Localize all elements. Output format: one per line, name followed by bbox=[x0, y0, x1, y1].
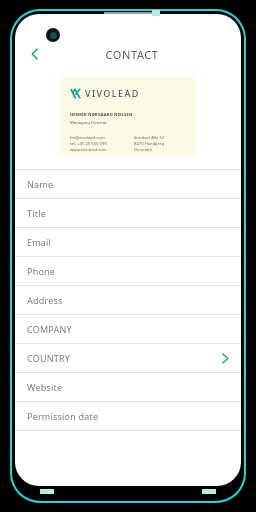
button[interactable]: Back bbox=[21, 40, 49, 68]
staticText: Email bbox=[27, 236, 229, 248]
button[interactable]: Website bbox=[15, 373, 241, 401]
staticText: COUNTRY bbox=[27, 352, 221, 364]
staticText: CONTACT bbox=[105, 47, 159, 62]
button[interactable]: Permission date bbox=[15, 402, 241, 430]
button[interactable]: VIVOLEAD bbox=[60, 77, 196, 156]
staticText: tel: +45 25 555 095 bbox=[70, 141, 107, 147]
staticText: Managing Director bbox=[70, 120, 107, 126]
staticText: Title bbox=[27, 207, 229, 219]
button[interactable]: Email bbox=[15, 228, 241, 256]
staticText: 8270 Hoejbjerg bbox=[134, 141, 165, 147]
button[interactable]: COUNTRY bbox=[15, 344, 241, 372]
button[interactable]: Phone bbox=[15, 257, 241, 285]
staticText: Phone bbox=[27, 265, 229, 277]
button[interactable]: Name bbox=[15, 170, 241, 198]
staticText: Name bbox=[27, 178, 229, 190]
staticText: www.vivolead.com bbox=[70, 147, 107, 153]
staticText: Sundvet Alle 53 bbox=[134, 135, 165, 141]
button[interactable]: Title bbox=[15, 199, 241, 227]
staticText: hn@vivolead.com bbox=[70, 135, 105, 141]
staticText: Website bbox=[27, 381, 229, 393]
button[interactable]: COMPANY bbox=[15, 315, 241, 343]
staticText: Address bbox=[27, 294, 229, 306]
staticText: COMPANY bbox=[27, 323, 229, 335]
button[interactable]: Address bbox=[15, 286, 241, 314]
staticText: Denmark bbox=[134, 147, 153, 153]
staticText: HENRIK NØRGAARD NIELSEN bbox=[70, 112, 133, 118]
staticText: VIVOLEAD bbox=[85, 87, 140, 99]
staticText: Permission date bbox=[27, 410, 229, 422]
